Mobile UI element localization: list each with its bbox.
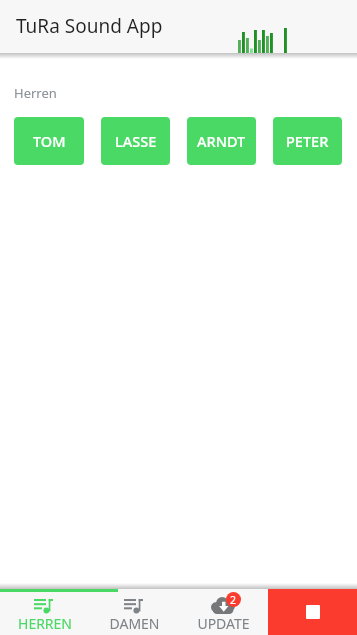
staticText: ARNDT	[197, 131, 246, 151]
button[interactable]: Stop playback	[268, 589, 357, 635]
button[interactable]: HERREN	[0, 589, 90, 635]
button[interactable]: 2	[179, 589, 268, 635]
staticText: PETER	[286, 131, 329, 151]
staticText: TOM	[33, 131, 66, 151]
button[interactable]: LASSE	[101, 117, 170, 165]
staticText: LASSE	[115, 131, 157, 151]
button[interactable]: ARNDT	[187, 117, 256, 165]
button[interactable]: DAMEN	[90, 589, 179, 635]
staticText: UPDATE	[197, 614, 250, 633]
button[interactable]: PETER	[273, 117, 342, 165]
staticText: Herren	[14, 84, 57, 102]
button[interactable]: TOM	[14, 117, 84, 165]
staticText: 2	[230, 593, 237, 607]
staticText: TuRa Sound App	[16, 13, 163, 39]
staticText: DAMEN	[109, 614, 160, 633]
staticText: HERREN	[18, 614, 72, 633]
